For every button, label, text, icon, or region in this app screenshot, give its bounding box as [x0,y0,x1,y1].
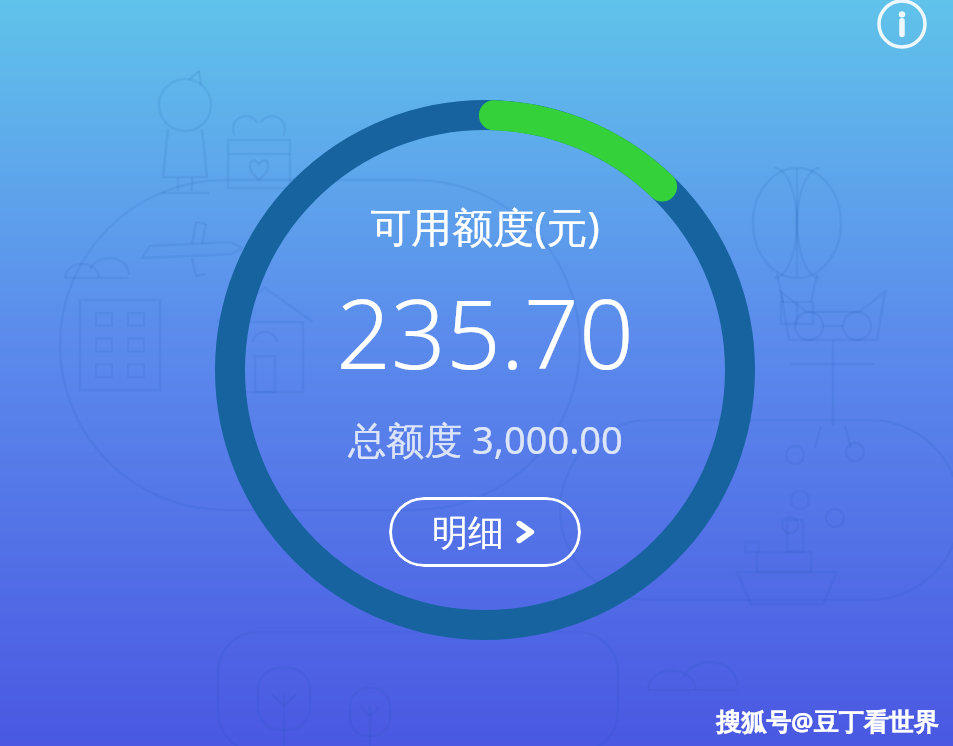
staticText: 235.70 [336,266,634,397]
button[interactable]: Information [876,0,928,50]
button[interactable]: 明细 [389,497,581,567]
staticText: 可用额度(元) [370,198,600,254]
staticText: 总额度 3,000.00 [348,413,623,465]
staticText: 明细 [432,510,504,555]
staticText: 搜狐号@豆丁看世界 [716,704,939,738]
